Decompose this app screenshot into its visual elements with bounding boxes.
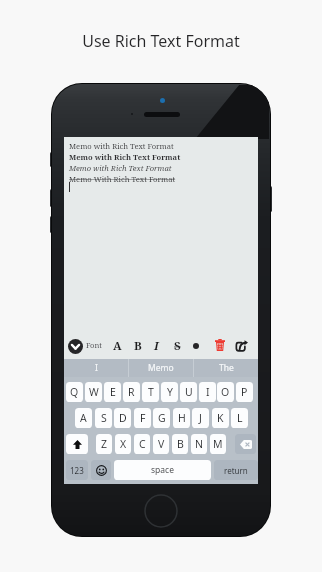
staticText: I (95, 362, 98, 374)
button[interactable]: Delete (212, 337, 227, 352)
staticText: M (213, 437, 223, 451)
staticText: Memo with Rich Text Format (69, 163, 172, 174)
button[interactable]: I (199, 382, 216, 402)
staticText: A (113, 338, 122, 354)
button[interactable]: space (114, 460, 211, 480)
button[interactable]: I (150, 337, 163, 354)
staticText: Q (70, 385, 79, 399)
button[interactable]: Share (234, 337, 249, 352)
button[interactable]: X (115, 434, 131, 454)
button[interactable]: Font (86, 340, 102, 350)
button[interactable]: F (134, 408, 151, 428)
staticText: Y (167, 385, 173, 399)
button[interactable]: return (214, 460, 258, 480)
button[interactable]: Z (96, 434, 112, 454)
staticText: S (174, 338, 181, 354)
staticText: The (219, 362, 234, 374)
button[interactable]: Backspace (235, 434, 256, 454)
button[interactable]: N (191, 434, 207, 454)
button[interactable]: V (153, 434, 169, 454)
button[interactable]: B (131, 337, 144, 354)
staticText: J (199, 411, 202, 425)
staticText: K (217, 411, 224, 425)
staticText: Memo With Rich Text Format (69, 174, 176, 185)
button[interactable]: P (236, 382, 253, 402)
button[interactable]: K (212, 408, 229, 428)
button[interactable]: Y (161, 382, 178, 402)
button[interactable]: O (217, 382, 234, 402)
staticText: H (178, 411, 186, 425)
staticText: T (148, 385, 154, 399)
button[interactable]: Memo (129, 359, 193, 377)
staticText: I (206, 385, 210, 399)
button[interactable]: D (114, 408, 131, 428)
staticText: Z (101, 437, 108, 451)
button[interactable]: C (134, 434, 150, 454)
staticText: V (158, 437, 165, 451)
staticText: W (89, 385, 99, 399)
staticText: B (177, 437, 184, 451)
button[interactable]: The (194, 359, 258, 377)
button[interactable]: A (75, 408, 92, 428)
button[interactable]: E (104, 382, 121, 402)
staticText: E (110, 385, 116, 399)
staticText: return (224, 465, 248, 476)
staticText: R (128, 385, 135, 399)
staticText: L (237, 411, 243, 425)
staticText: D (119, 411, 127, 425)
staticText: A (80, 411, 87, 425)
button[interactable]: M (210, 434, 226, 454)
button[interactable]: Collapse toolbar (68, 339, 83, 354)
staticText: P (241, 385, 248, 399)
staticText: U (185, 385, 193, 399)
button[interactable]: R (123, 382, 140, 402)
staticText: F (140, 411, 146, 425)
staticText: C (139, 437, 146, 451)
staticText: S (101, 411, 107, 425)
staticText: X (120, 437, 127, 451)
staticText: B (134, 338, 142, 354)
button[interactable]: L (231, 408, 248, 428)
staticText: Use Rich Text Format (0, 30, 322, 52)
button[interactable]: U (180, 382, 197, 402)
button[interactable]: S (95, 408, 112, 428)
staticText: I (154, 338, 159, 354)
staticText: 123 (70, 465, 84, 476)
staticText: Memo (148, 362, 174, 374)
button[interactable]: I (64, 359, 128, 377)
staticText: N (195, 437, 203, 451)
button[interactable]: W (85, 382, 102, 402)
button[interactable]: Shift (66, 434, 88, 454)
staticText: O (221, 385, 230, 399)
button[interactable]: S (171, 337, 184, 354)
button[interactable]: B (172, 434, 188, 454)
button[interactable]: 123 (66, 460, 88, 480)
button[interactable]: Emoji (91, 460, 111, 480)
staticText: Memo with Rich Text Format (69, 141, 174, 152)
button[interactable]: Bullet list (189, 339, 203, 353)
button[interactable]: J (192, 408, 209, 428)
button[interactable]: H (173, 408, 190, 428)
button[interactable]: T (142, 382, 159, 402)
staticText: space (151, 464, 174, 476)
button[interactable]: Q (66, 382, 83, 402)
staticText: Font (86, 340, 102, 350)
staticText: Memo with Rich Text Format (69, 152, 181, 163)
staticText: G (158, 411, 166, 425)
button[interactable]: G (153, 408, 170, 428)
button[interactable]: A (111, 337, 124, 354)
